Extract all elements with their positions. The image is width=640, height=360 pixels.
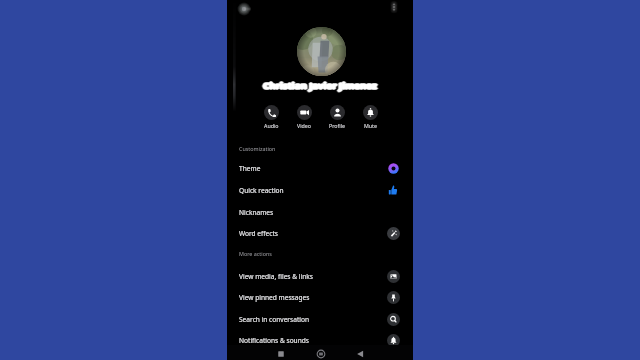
staticText: Audio [264, 122, 279, 129]
button[interactable]: Mute [357, 104, 383, 130]
button[interactable]: Notifications & sounds [227, 329, 413, 351]
staticText: Notifications & sounds [239, 336, 309, 345]
button[interactable]: Nicknames [227, 201, 413, 223]
staticText: Quick reaction [239, 186, 284, 195]
staticText: Nicknames [239, 208, 274, 217]
staticText: More actions [239, 250, 272, 257]
button[interactable]: Home [315, 348, 327, 360]
staticText: Christian Javier Jimenez [262, 80, 376, 93]
staticText: Christian Javier Jimenez [263, 79, 377, 92]
staticText: View pinned messages [239, 293, 310, 302]
button[interactable]: Back [237, 1, 253, 17]
button[interactable]: Search in conversation [227, 308, 413, 330]
staticText: Word effects [239, 229, 279, 238]
staticText: Christian Javier Jimenez [262, 78, 376, 91]
button[interactable]: View media, files & links [227, 265, 413, 287]
button[interactable]: View pinned messages [227, 286, 413, 308]
staticText: Christian Javier Jimenez [263, 79, 377, 92]
button[interactable]: Video [291, 104, 317, 130]
staticText: Christian Javier Jimenez [265, 79, 379, 92]
button[interactable]: Theme [227, 157, 413, 179]
staticText: Christian Javier Jimenez [262, 79, 376, 92]
button[interactable]: More options [386, 0, 402, 15]
button[interactable]: Back [354, 348, 366, 360]
staticText: Christian Javier Jimenez [264, 80, 378, 93]
staticText: Customization [239, 145, 276, 152]
staticText: Search in conversation [239, 315, 310, 324]
staticText: Christian Javier Jimenez [264, 79, 378, 92]
button[interactable]: Audio [258, 104, 284, 130]
staticText: Theme [239, 164, 261, 173]
staticText: View media, files & links [239, 272, 313, 281]
staticText: Christian Javier Jimenez [263, 80, 377, 93]
button[interactable]: Recents [275, 348, 287, 360]
staticText: Christian Javier Jimenez [262, 79, 376, 92]
button[interactable]: Word effects [227, 222, 413, 244]
staticText: Christian Javier Jimenez [263, 78, 377, 91]
staticText: Christian Javier Jimenez [264, 79, 378, 92]
staticText: Christian Javier Jimenez [263, 80, 377, 93]
staticText: Christian Javier Jimenez [263, 78, 377, 91]
button[interactable]: Profile [324, 104, 350, 130]
button[interactable]: Profile photo [297, 27, 346, 76]
staticText: Christian Javier Jimenez [263, 79, 377, 92]
staticText: Christian Javier Jimenez [264, 78, 378, 91]
staticText: Christian Javier Jimenez [261, 79, 375, 92]
staticText: Video [297, 122, 311, 129]
staticText: Profile [329, 122, 346, 129]
staticText: Mute [364, 122, 377, 129]
button[interactable]: Quick reaction [227, 179, 413, 201]
